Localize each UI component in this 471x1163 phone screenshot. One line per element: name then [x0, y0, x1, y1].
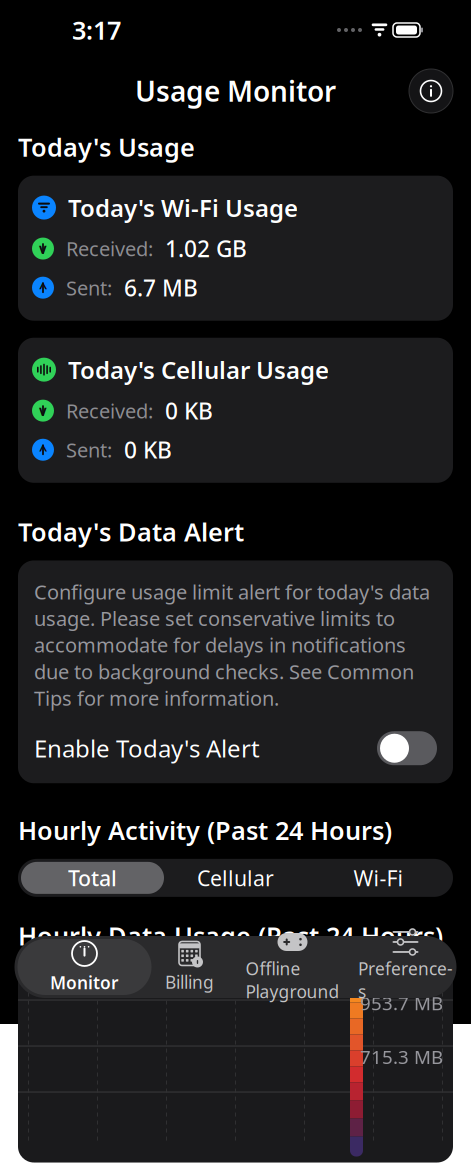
staticText: 0 KB — [165, 396, 213, 426]
staticText: Hourly Data Usage (Past 24 Hours) — [18, 919, 443, 952]
button[interactable]: Enable Today's Alert — [34, 711, 437, 783]
staticText: ^ — [39, 440, 47, 459]
staticText: Total — [68, 864, 117, 892]
staticText: Preferences — [358, 957, 453, 1003]
staticText: Sent: — [66, 274, 112, 301]
staticText: 715.3 MB — [360, 1044, 443, 1069]
staticText: Configure usage limit alert for today's … — [34, 578, 430, 711]
staticText: 1.02 GB — [165, 233, 247, 264]
button[interactable]: Preferences — [357, 939, 453, 995]
staticText: v — [39, 402, 47, 419]
staticText: Offline Playground — [245, 957, 339, 1003]
staticText: Billing — [165, 970, 214, 993]
staticText: Usage Monitor — [135, 72, 336, 110]
staticText: Wi-Fi — [353, 864, 403, 892]
staticText: 0 KB — [124, 435, 172, 465]
staticText: Today's Cellular Usage — [68, 354, 329, 386]
staticText: 6.7 MB — [124, 273, 198, 303]
staticText: Today's Data Alert — [18, 515, 244, 548]
staticText: 953.7 MB — [360, 990, 443, 1015]
button[interactable]: Offline Playground — [227, 939, 357, 995]
staticText: Received: — [66, 397, 153, 424]
button[interactable]: Billing — [151, 939, 227, 995]
button[interactable]: Monitor — [17, 939, 151, 995]
staticText: Monitor — [50, 971, 119, 994]
staticText: 3:17 — [72, 13, 121, 47]
staticText: Today's Wi-Fi Usage — [68, 192, 298, 223]
button[interactable]: Wi-Fi — [307, 862, 450, 894]
staticText: Enable Today's Alert — [34, 732, 260, 764]
staticText: ^ — [39, 278, 47, 297]
staticText: Received: — [66, 235, 153, 262]
button[interactable]: Information — [409, 69, 453, 113]
staticText: Today's Usage — [18, 130, 195, 164]
button[interactable]: Cellular — [164, 862, 307, 894]
button[interactable]: Total — [21, 862, 164, 894]
staticText: Cellular — [197, 864, 274, 892]
staticText: v — [39, 240, 47, 257]
staticText: Sent: — [66, 436, 112, 463]
staticText: Hourly Activity (Past 24 Hours) — [18, 813, 392, 847]
